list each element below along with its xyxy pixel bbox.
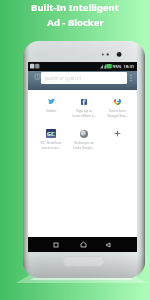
staticText: Sign up to Learn More t…	[72, 108, 96, 118]
button[interactable]: Recents	[49, 237, 63, 252]
button[interactable]: Back	[101, 237, 115, 252]
staticText: Ad - Blocker	[47, 16, 104, 29]
staticText: Brdscope.se Links Single…	[73, 140, 95, 150]
button[interactable]: Score here Google Sea…	[101, 96, 133, 118]
staticText: GC BrdsView secuire.we…	[40, 140, 62, 150]
button[interactable]	[101, 128, 133, 140]
button[interactable]: Sign up to Learn More t…	[68, 96, 100, 118]
button[interactable]: GC	[35, 128, 67, 150]
button[interactable]: Home	[76, 237, 90, 252]
button[interactable]: Brdscope.se Links Single…	[68, 128, 100, 150]
button[interactable]: More options	[128, 72, 134, 84]
staticText: Twitter	[45, 108, 57, 113]
button[interactable]: Tabs	[35, 74, 40, 79]
staticText: Score here Google Sea…	[107, 108, 128, 118]
staticText: GC	[47, 130, 55, 138]
staticText: Search or type url	[41, 75, 81, 81]
staticText: 95% 18:31	[113, 64, 135, 70]
button[interactable]: Twitter	[35, 96, 67, 113]
button[interactable]: Search or type url	[41, 72, 127, 84]
staticText: Built-In Intelligent	[31, 1, 119, 14]
